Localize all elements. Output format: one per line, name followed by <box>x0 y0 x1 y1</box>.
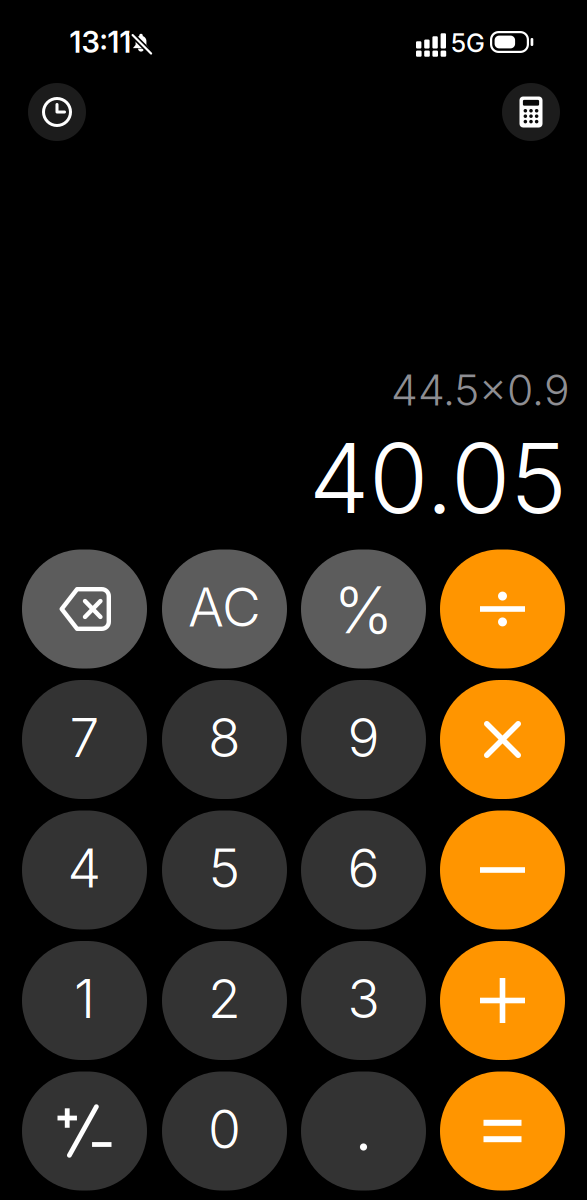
staticText: 7 <box>69 705 99 770</box>
staticText: % <box>333 571 393 649</box>
staticText: 40.05 <box>309 420 567 536</box>
staticText: 0 <box>208 1097 241 1161</box>
button[interactable]: Delete <box>22 549 147 668</box>
staticText: 1 <box>74 966 95 1031</box>
staticText: 8 <box>208 705 241 770</box>
button[interactable]: Multiply <box>440 680 565 799</box>
button[interactable]: Equals <box>440 1071 565 1190</box>
staticText: 9 <box>347 705 379 770</box>
button[interactable]: All clear <box>162 549 287 668</box>
button[interactable]: 5 <box>162 810 287 929</box>
button[interactable]: 7 <box>22 680 147 799</box>
button[interactable]: Subtract <box>440 810 565 929</box>
staticText: AC <box>188 575 261 639</box>
button[interactable]: 8 <box>162 680 287 799</box>
button[interactable]: 2 <box>162 941 287 1060</box>
button[interactable]: Percent <box>301 549 426 668</box>
button[interactable]: Decimal point <box>301 1071 426 1190</box>
button[interactable]: 1 <box>22 941 147 1060</box>
button[interactable]: Toggle sign <box>22 1071 147 1190</box>
button[interactable]: Calculator <box>502 83 560 141</box>
staticText: 44.5×0.9 <box>391 364 570 416</box>
button[interactable]: History <box>28 83 86 141</box>
staticText: 6 <box>347 836 379 900</box>
staticText: 2 <box>208 966 241 1031</box>
button[interactable]: Add <box>440 941 565 1060</box>
staticText: 13:11 <box>69 24 131 60</box>
staticText: 5 <box>208 836 240 900</box>
button[interactable]: 6 <box>301 810 426 929</box>
staticText: 5G <box>451 28 485 58</box>
button[interactable]: 3 <box>301 941 426 1060</box>
button[interactable]: 0 <box>162 1071 287 1190</box>
button[interactable]: 4 <box>22 810 147 929</box>
button[interactable]: Divide <box>440 549 565 668</box>
button[interactable]: 9 <box>301 680 426 799</box>
staticText: 3 <box>347 966 379 1031</box>
staticText: 4 <box>67 836 101 900</box>
